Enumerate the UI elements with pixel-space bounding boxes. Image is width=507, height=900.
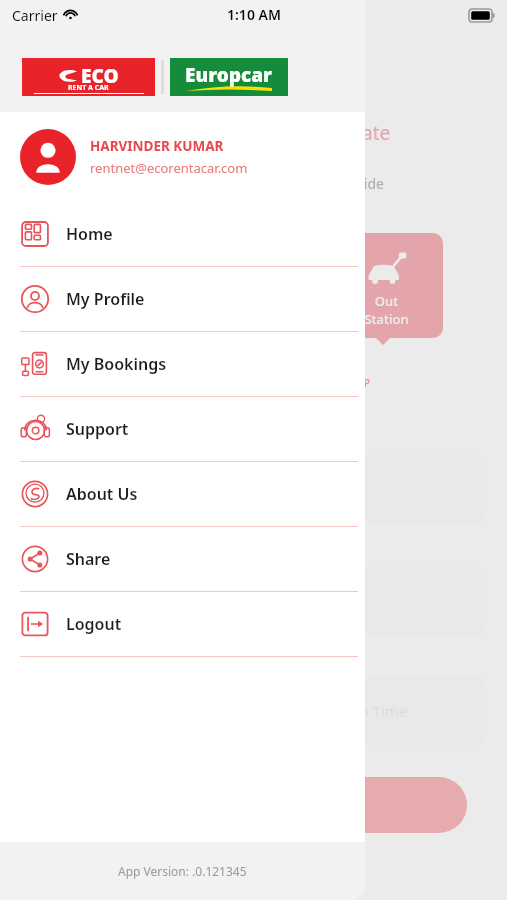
staticText: Logout [66, 613, 122, 635]
staticText: App Version: .0.121345 [118, 863, 247, 879]
staticText: Home [66, 223, 113, 245]
button[interactable]: Home [0, 202, 365, 266]
staticText: My Profile [66, 288, 145, 310]
button[interactable]: Share [0, 527, 365, 591]
staticText: Corporate [300, 120, 391, 146]
staticText: Out Station [364, 292, 409, 328]
button[interactable]: Logout [0, 592, 365, 656]
staticText: Pickup Time [322, 701, 408, 721]
staticText: rentnet@ecorentacar.com [90, 159, 248, 177]
button[interactable]: My Bookings [0, 332, 365, 396]
staticText: 1:10 AM [227, 5, 281, 24]
button[interactable]: ROUND TRIP [300, 368, 378, 398]
staticText: Carrier [12, 6, 58, 25]
button[interactable]: Pickup Time [22, 676, 486, 746]
button[interactable]: About Us [0, 462, 365, 526]
button[interactable]: My Profile [0, 267, 365, 331]
staticText: My Bookings [66, 353, 167, 375]
staticText: Share [66, 548, 111, 570]
staticText: Intercity ride [300, 174, 384, 193]
staticText: ROUND TRIP [309, 376, 370, 390]
button[interactable]: Out Station [330, 233, 443, 338]
staticText: Europcar [185, 62, 273, 88]
button[interactable] [22, 455, 486, 525]
button[interactable]: Support [0, 397, 365, 461]
staticText: ECO [81, 63, 119, 89]
button[interactable] [150, 777, 467, 833]
staticText: About Us [66, 483, 138, 505]
staticText: Support [66, 418, 129, 440]
button[interactable] [22, 567, 486, 637]
staticText: HARVINDER KUMAR [90, 137, 224, 155]
staticText: RENT A CAR [68, 83, 109, 93]
